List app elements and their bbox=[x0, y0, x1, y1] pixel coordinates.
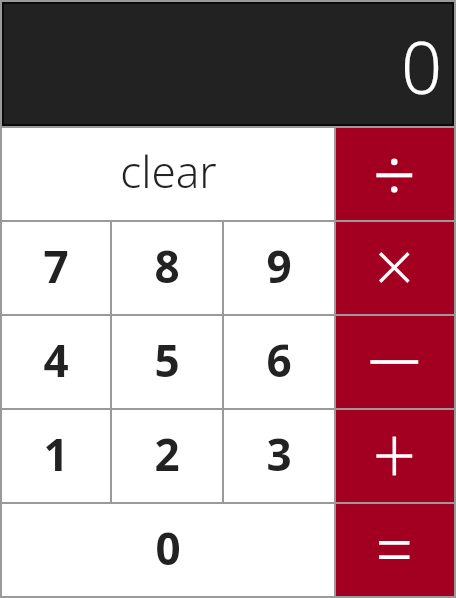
button[interactable]: Divide bbox=[336, 128, 454, 220]
staticText: 6 bbox=[266, 330, 292, 390]
staticText: 0 bbox=[155, 518, 181, 578]
button[interactable]: Result display, 0 bbox=[4, 4, 452, 124]
button[interactable]: 7 bbox=[2, 222, 110, 314]
button[interactable]: Subtract bbox=[336, 316, 454, 408]
button[interactable]: clear bbox=[2, 128, 334, 220]
button[interactable]: 9 bbox=[224, 222, 334, 314]
button[interactable]: 1 bbox=[2, 410, 110, 502]
staticText: 5 bbox=[154, 330, 180, 390]
staticText: 0 bbox=[401, 17, 443, 115]
button[interactable]: Add bbox=[336, 410, 454, 502]
button[interactable]: 3 bbox=[224, 410, 334, 502]
button[interactable]: 2 bbox=[112, 410, 222, 502]
button[interactable]: 0 bbox=[2, 504, 334, 596]
staticText: 9 bbox=[266, 236, 292, 296]
staticText: 8 bbox=[154, 236, 180, 296]
button[interactable]: 8 bbox=[112, 222, 222, 314]
button[interactable]: Equals bbox=[336, 504, 454, 596]
button[interactable]: 4 bbox=[2, 316, 110, 408]
staticText: 2 bbox=[154, 424, 180, 484]
staticText: 7 bbox=[43, 236, 69, 296]
staticText: 1 bbox=[43, 424, 69, 484]
staticText: 3 bbox=[266, 424, 292, 484]
button[interactable]: 6 bbox=[224, 316, 334, 408]
button[interactable]: 5 bbox=[112, 316, 222, 408]
staticText: 4 bbox=[43, 330, 69, 390]
staticText: clear bbox=[120, 141, 217, 201]
button[interactable]: Multiply bbox=[336, 222, 454, 314]
